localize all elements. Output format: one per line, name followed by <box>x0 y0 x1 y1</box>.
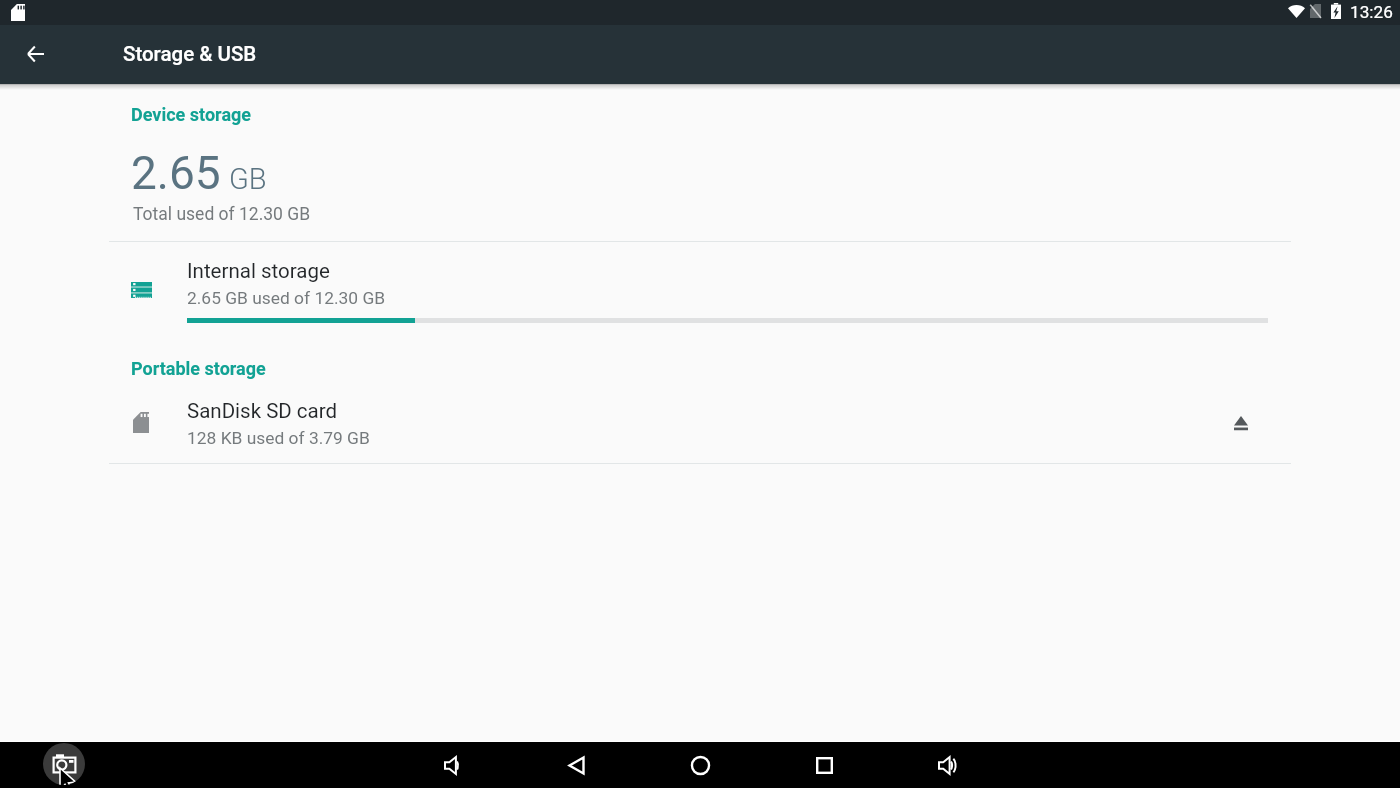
staticText: 2.65 <box>131 146 221 200</box>
button[interactable]: Volume down <box>428 742 476 788</box>
staticText: Portable storage <box>131 358 266 379</box>
button[interactable]: Volume up <box>924 742 972 788</box>
staticText: GB <box>229 162 267 196</box>
staticText: 128 KB used of 3.79 GB <box>187 428 370 448</box>
staticText: SanDisk SD card <box>187 399 338 423</box>
staticText: 2.65 GB used of 12.30 GB <box>187 288 386 308</box>
staticText: Storage & USB <box>123 42 257 66</box>
button[interactable]: Back <box>552 742 600 788</box>
button[interactable]: SanDisk SD card <box>109 388 1291 463</box>
button[interactable]: Take screenshot <box>43 743 85 785</box>
button[interactable]: Back <box>11 30 59 78</box>
staticText: Internal storage <box>187 259 330 283</box>
staticText: Total used of 12.30 GB <box>133 204 311 225</box>
button[interactable]: Internal storage <box>109 242 1291 332</box>
staticText: Device storage <box>131 104 252 125</box>
button[interactable]: Home <box>676 742 724 788</box>
staticText: 13:26 <box>1350 2 1393 22</box>
button[interactable]: Eject SD card <box>1217 399 1265 447</box>
button[interactable]: Recent apps <box>800 742 848 788</box>
